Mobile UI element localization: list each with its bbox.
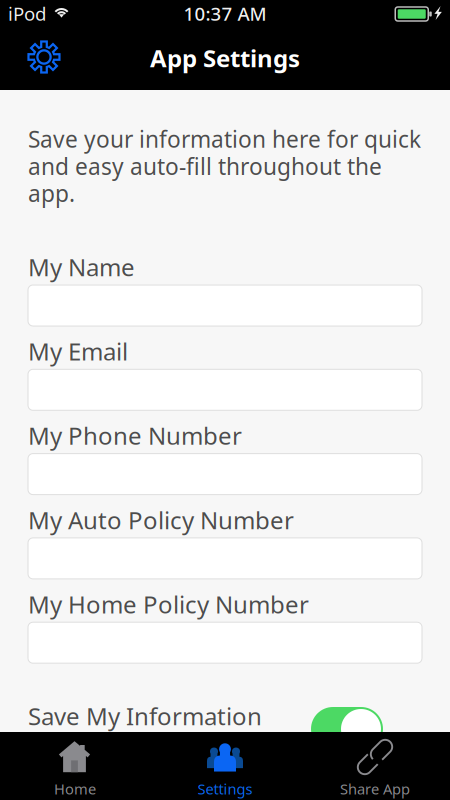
staticText: Settings xyxy=(197,779,252,798)
staticText: 10:37 AM xyxy=(183,1,266,26)
button[interactable]: Home xyxy=(0,732,150,800)
staticText: Share App xyxy=(340,779,410,798)
staticText: My Phone Number xyxy=(28,420,242,451)
staticText: My Auto Policy Number xyxy=(28,504,294,536)
staticText: Save your information here for quick and… xyxy=(28,124,421,208)
staticText: My Email xyxy=(28,335,128,367)
staticText: Save My Information xyxy=(28,700,262,732)
button[interactable]: Settings xyxy=(150,732,300,800)
staticText: My Home Policy Number xyxy=(28,588,309,620)
button[interactable]: Save My Information xyxy=(311,707,383,751)
staticText: App Settings xyxy=(150,42,300,74)
staticText: Home xyxy=(54,779,96,798)
staticText: iPod xyxy=(8,1,46,26)
button[interactable]: Settings xyxy=(19,32,69,82)
button[interactable]: Share App xyxy=(300,732,450,800)
staticText: My Name xyxy=(28,251,135,283)
